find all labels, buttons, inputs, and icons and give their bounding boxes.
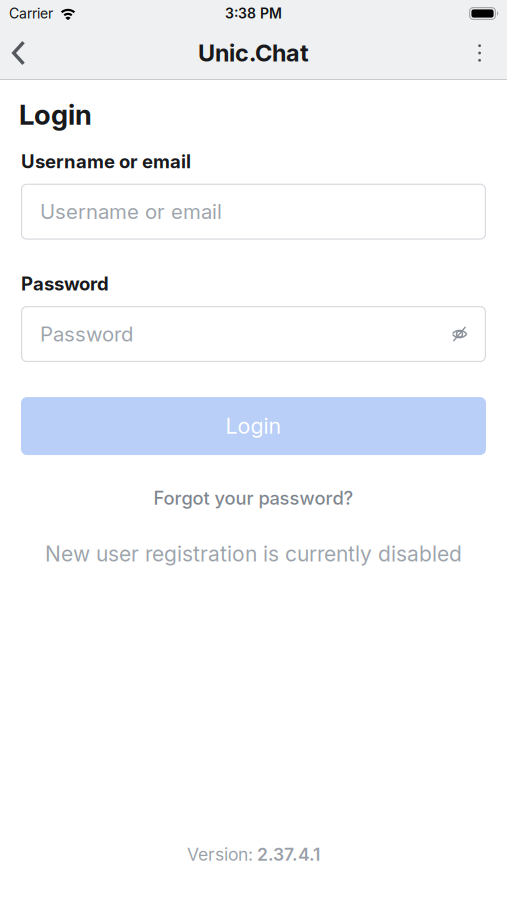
button[interactable]: More options [462,27,507,79]
staticText: Password [40,322,133,346]
staticText: Carrier [9,5,53,22]
button[interactable]: Back [0,27,43,79]
staticText: Username or email [40,199,222,224]
staticText: 2.37.4.1 [257,844,320,865]
staticText: Version: [187,844,253,865]
staticText: Username or email [21,150,191,173]
staticText: Login [19,98,92,131]
button[interactable]: Login [21,397,486,455]
textField[interactable]: Username or email [40,197,467,227]
button[interactable]: Show password [446,321,473,346]
staticText: Password [40,319,144,349]
staticText: Unic.Chat [198,39,309,67]
staticText: Forgot your password? [153,487,353,509]
staticText: New user registration is currently disab… [45,541,462,567]
staticText: Login [225,413,281,439]
staticText: Password [21,273,109,295]
secureTextField[interactable]: Password [40,319,467,349]
staticText: 3:38 PM [225,5,282,22]
staticText: Username or email [40,197,245,227]
button[interactable]: Forgot your password? [153,487,353,509]
